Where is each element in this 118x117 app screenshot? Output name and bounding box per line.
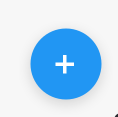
- button[interactable]: Add: [30, 28, 101, 99]
